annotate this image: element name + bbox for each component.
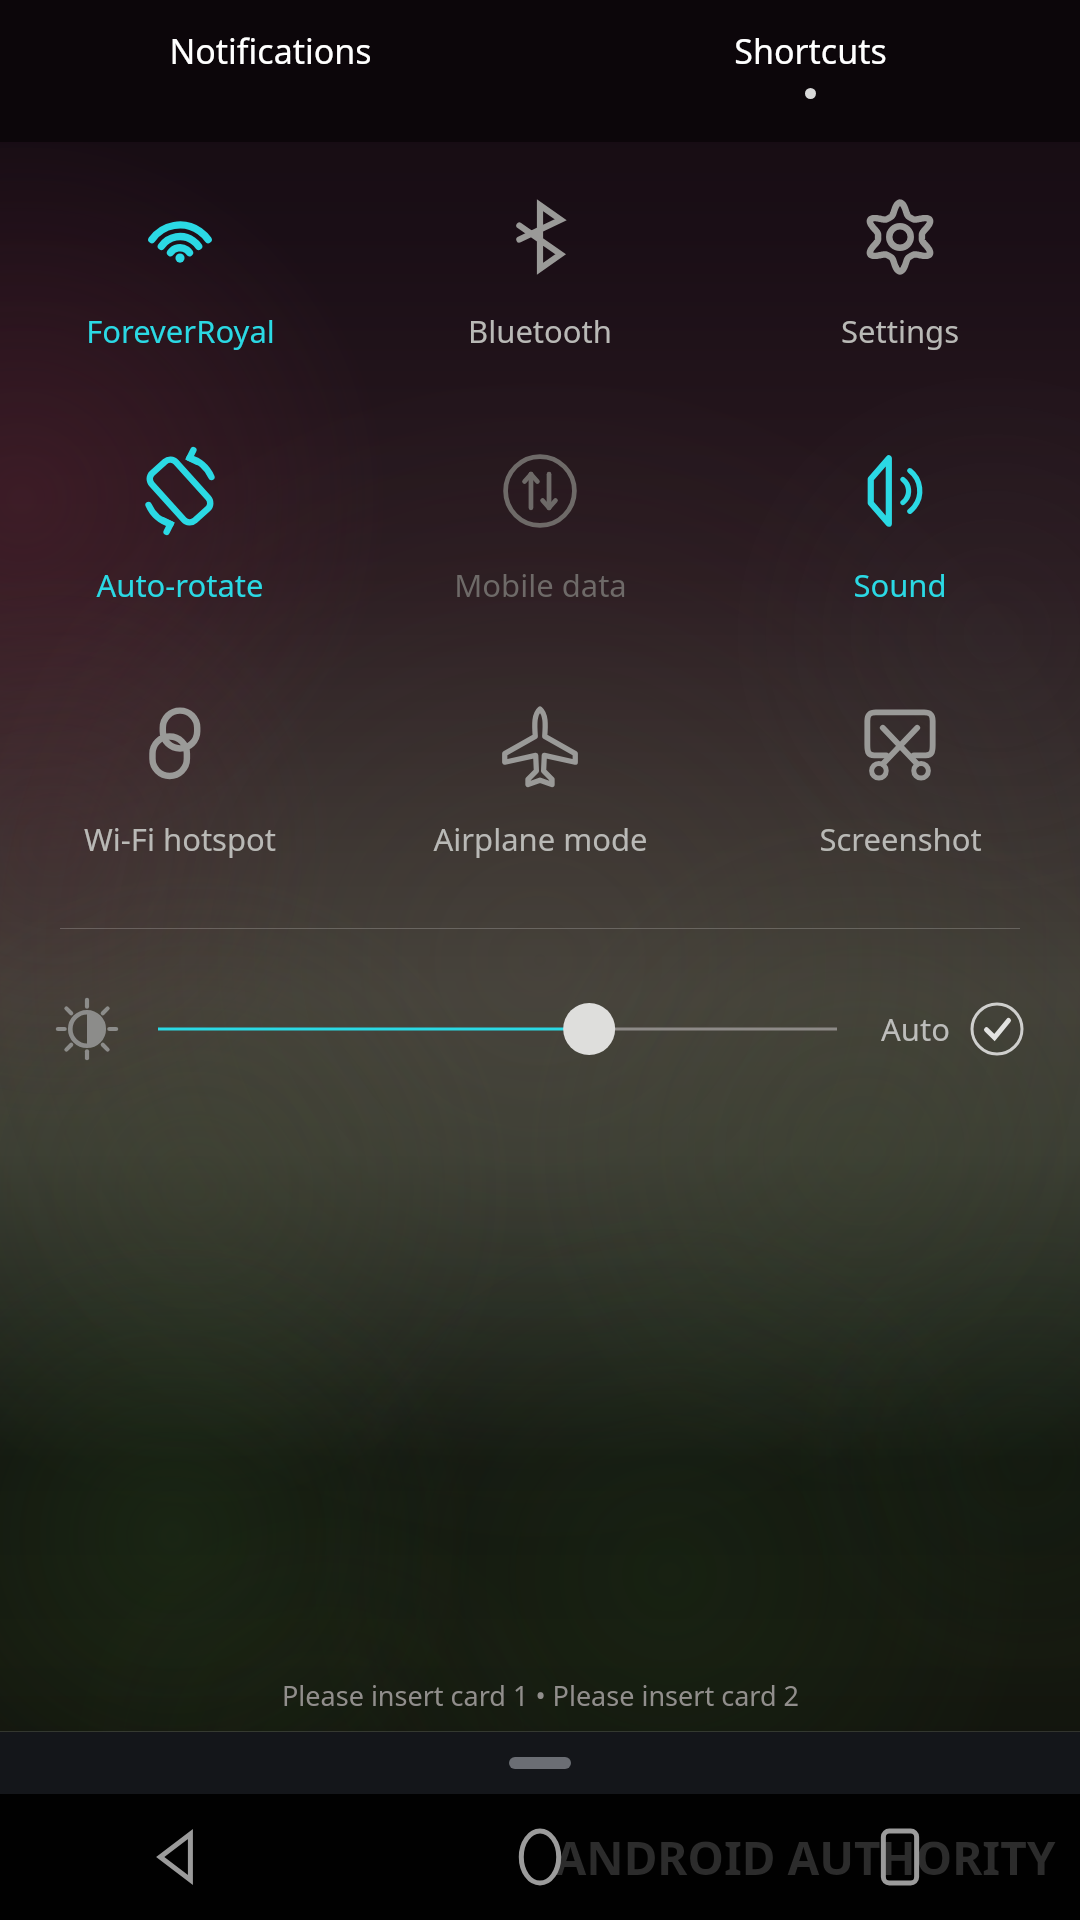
button[interactable]: Wi-Fi hotspot bbox=[0, 702, 360, 860]
button[interactable]: Recents bbox=[874, 1831, 926, 1883]
button[interactable]: Home bbox=[514, 1831, 566, 1883]
button[interactable]: ForeverRoyal bbox=[0, 194, 360, 352]
button[interactable]: Settings bbox=[720, 194, 1080, 352]
button[interactable]: Auto-rotate bbox=[0, 448, 360, 606]
staticText: ANDROID AUTHORITY bbox=[554, 1826, 1056, 1889]
button[interactable]: Shortcuts bbox=[540, 28, 1080, 142]
button[interactable]: Mobile data bbox=[360, 448, 720, 606]
staticText: Shortcuts bbox=[734, 28, 887, 74]
staticText: Airplane mode bbox=[433, 818, 648, 860]
button[interactable] bbox=[158, 999, 837, 1059]
button[interactable]: Bluetooth bbox=[360, 194, 720, 352]
button[interactable]: Auto bbox=[881, 1002, 1024, 1056]
button[interactable]: Back bbox=[154, 1831, 206, 1883]
button[interactable]: Notifications bbox=[0, 28, 540, 142]
staticText: Mobile data bbox=[454, 564, 627, 606]
staticText: Auto bbox=[881, 1008, 950, 1050]
staticText: Please insert card 1 • Please insert car… bbox=[282, 1677, 799, 1714]
other: Brightness bbox=[56, 998, 118, 1060]
staticText: Bluetooth bbox=[468, 310, 612, 352]
staticText: Settings bbox=[841, 310, 959, 352]
staticText: Auto-rotate bbox=[96, 564, 264, 606]
button[interactable] bbox=[509, 1757, 571, 1769]
button[interactable]: Screenshot bbox=[720, 702, 1080, 860]
staticText: ForeverRoyal bbox=[86, 310, 275, 352]
staticText: Sound bbox=[853, 564, 947, 606]
staticText: Screenshot bbox=[819, 818, 982, 860]
button[interactable]: Airplane mode bbox=[360, 702, 720, 860]
staticText: Notifications bbox=[169, 28, 372, 74]
button[interactable]: Sound bbox=[720, 448, 1080, 606]
staticText: Wi-Fi hotspot bbox=[84, 818, 276, 860]
